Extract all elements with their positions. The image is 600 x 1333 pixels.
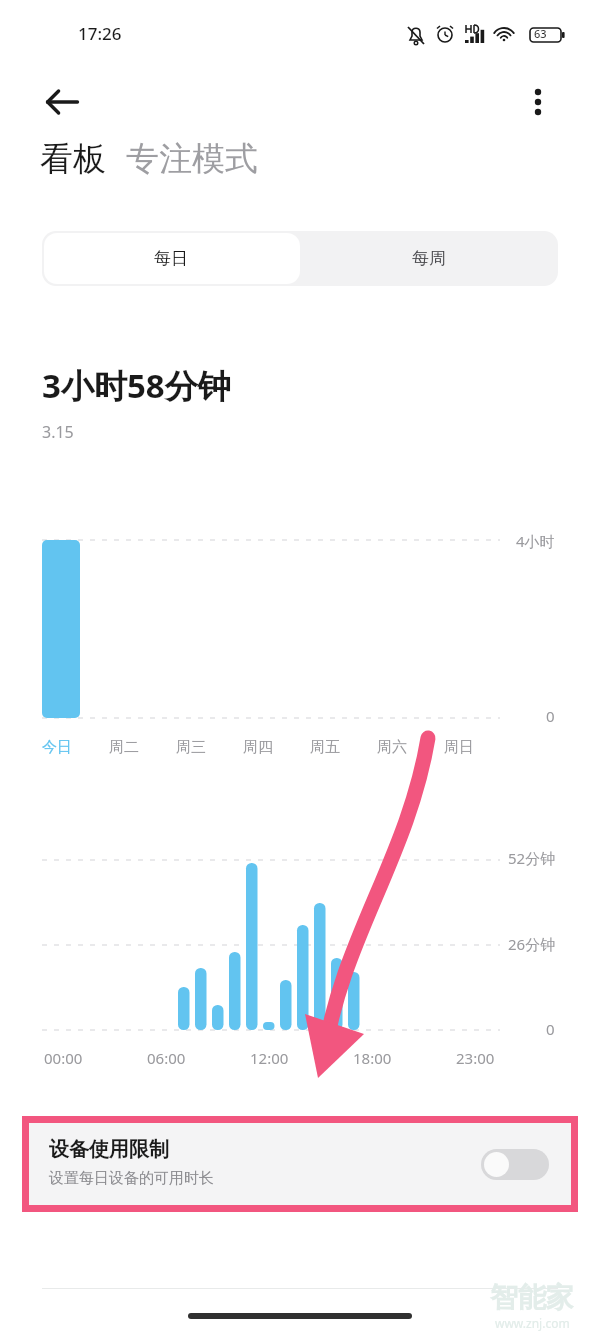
button[interactable]: 周五 xyxy=(310,738,368,757)
button[interactable]: 每日 xyxy=(42,231,300,286)
staticText: 设置每日设备的可用时长 xyxy=(49,1169,214,1188)
button[interactable]: More options xyxy=(506,70,570,134)
button[interactable]: 专注模式 xyxy=(126,138,258,180)
staticText: 52分钟 xyxy=(508,848,556,868)
button[interactable]: 周日 xyxy=(444,738,502,757)
button[interactable]: 每周 xyxy=(300,231,558,286)
staticText: 每日 xyxy=(154,248,188,269)
staticText: 0 xyxy=(546,706,555,726)
staticText: 06:00 xyxy=(147,1048,186,1068)
staticText: 智能家 xyxy=(490,1280,574,1315)
staticText: 设备使用限制 xyxy=(49,1137,169,1162)
staticText: 0 xyxy=(546,1019,555,1039)
button[interactable]: 周二 xyxy=(109,738,167,757)
button[interactable]: 看板 xyxy=(40,138,106,180)
button[interactable]: 周六 xyxy=(377,738,435,757)
staticText: 周五 xyxy=(310,738,340,757)
staticText: 3小时58分钟 xyxy=(42,363,231,408)
button[interactable]: 周四 xyxy=(243,738,301,757)
button[interactable]: 设备使用限制 xyxy=(29,1123,571,1205)
staticText: 今日 xyxy=(42,738,72,757)
staticText: 专注模式 xyxy=(126,138,258,180)
staticText: 3.15 xyxy=(42,421,74,443)
staticText: 23:00 xyxy=(456,1048,495,1068)
staticText: 26分钟 xyxy=(508,934,556,954)
staticText: 每周 xyxy=(412,248,446,269)
staticText: 63 xyxy=(534,26,547,41)
staticText: 4小时 xyxy=(516,531,555,551)
staticText: 17:26 xyxy=(78,22,122,45)
staticText: 看板 xyxy=(40,138,106,180)
staticText: 周二 xyxy=(109,738,139,757)
staticText: 周六 xyxy=(377,738,407,757)
staticText: 00:00 xyxy=(44,1048,83,1068)
button[interactable]: Toggle device usage limit xyxy=(481,1149,549,1180)
staticText: 周日 xyxy=(444,738,474,757)
staticText: www.znj.com xyxy=(495,1315,570,1331)
staticText: 周四 xyxy=(243,738,273,757)
button[interactable]: Back xyxy=(30,70,94,134)
staticText: 18:00 xyxy=(353,1048,392,1068)
button[interactable]: 周三 xyxy=(176,738,234,757)
button[interactable]: 今日 xyxy=(42,738,100,757)
staticText: 周三 xyxy=(176,738,206,757)
staticText: 12:00 xyxy=(250,1048,289,1068)
